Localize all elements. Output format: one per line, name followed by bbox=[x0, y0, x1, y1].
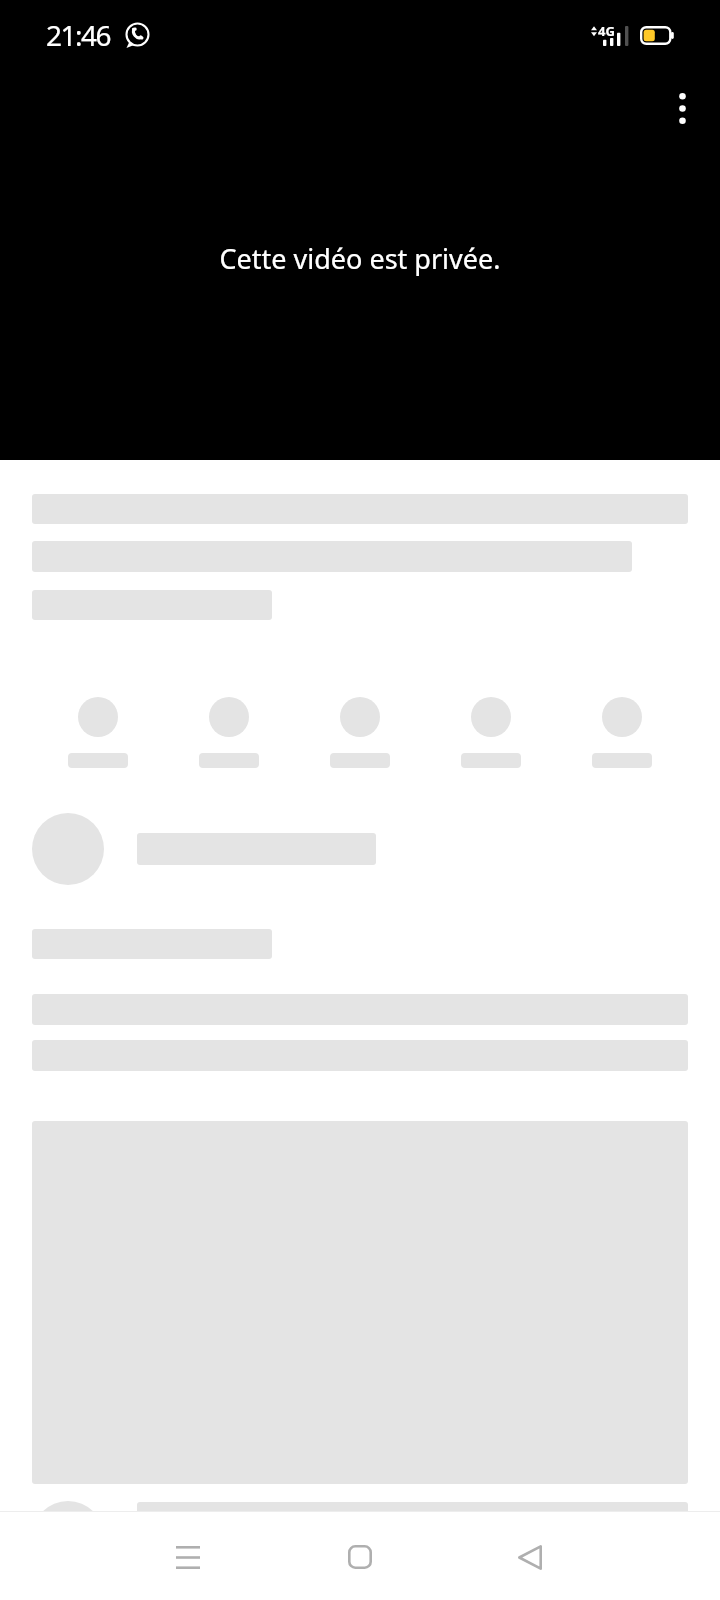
button[interactable]: Action bbox=[557, 687, 687, 779]
staticText: Cette vidéo est privée. bbox=[0, 240, 720, 277]
button[interactable]: Action bbox=[426, 687, 556, 779]
button[interactable]: Action bbox=[33, 687, 163, 779]
button[interactable]: More options bbox=[658, 84, 706, 132]
staticText: 4G bbox=[598, 22, 615, 40]
button[interactable]: Action bbox=[295, 687, 425, 779]
button[interactable]: Recent apps bbox=[152, 1521, 224, 1593]
button[interactable] bbox=[0, 805, 720, 893]
button[interactable]: Home bbox=[324, 1521, 396, 1593]
staticText: 21:46 bbox=[46, 16, 111, 54]
button[interactable]: Back bbox=[494, 1521, 566, 1593]
button[interactable]: Action bbox=[164, 687, 294, 779]
